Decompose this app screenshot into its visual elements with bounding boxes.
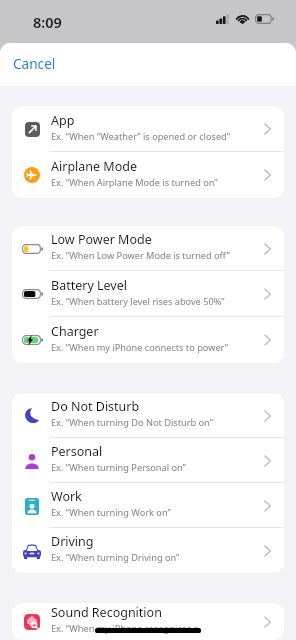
- button[interactable]: Work: [12, 483, 284, 528]
- button[interactable]: Sound Recognition: [12, 603, 284, 640]
- staticText: Ex. “When turning Work on”: [51, 506, 171, 519]
- button[interactable]: Airplane Mode: [12, 152, 284, 198]
- button[interactable]: Driving: [12, 528, 284, 573]
- staticText: Ex. “When “Weather” is opened or closed”: [51, 130, 231, 143]
- button[interactable]: Battery Level: [12, 271, 284, 317]
- button[interactable]: Low Power Mode: [12, 226, 284, 271]
- button[interactable]: Charger: [12, 317, 284, 363]
- staticText: Sound Recognition: [51, 604, 162, 621]
- button[interactable]: App: [12, 106, 284, 152]
- button[interactable]: Do Not Disturb: [12, 393, 284, 438]
- staticText: Airplane Mode: [51, 158, 137, 175]
- staticText: Ex. “When turning Personal on”: [51, 461, 186, 474]
- staticText: Ex. “When battery level rises above 50%”: [51, 295, 225, 308]
- staticText: Ex. “When my iPhone connects to power”: [51, 341, 229, 354]
- staticText: Cancel: [13, 54, 56, 73]
- staticText: Battery Level: [51, 277, 127, 294]
- staticText: Ex. “When my iPhone recognizes a: [51, 622, 199, 635]
- staticText: Ex. “When turning Driving on”: [51, 551, 180, 564]
- button[interactable]: Cancel: [4, 49, 65, 78]
- staticText: 8:09: [33, 12, 62, 32]
- staticText: App: [51, 112, 75, 129]
- staticText: Do Not Disturb: [51, 398, 140, 415]
- staticText: Charger: [51, 323, 99, 340]
- staticText: Ex. “When Low Power Mode is turned off”: [51, 249, 230, 262]
- staticText: Driving: [51, 533, 94, 550]
- staticText: Ex. “When turning Do Not Disturb on”: [51, 416, 213, 429]
- staticText: Low Power Mode: [51, 231, 152, 248]
- staticText: Ex. “When Airplane Mode is turned on”: [51, 176, 218, 189]
- staticText: Personal: [51, 443, 103, 460]
- staticText: Work: [51, 488, 82, 505]
- button[interactable]: Personal: [12, 438, 284, 483]
